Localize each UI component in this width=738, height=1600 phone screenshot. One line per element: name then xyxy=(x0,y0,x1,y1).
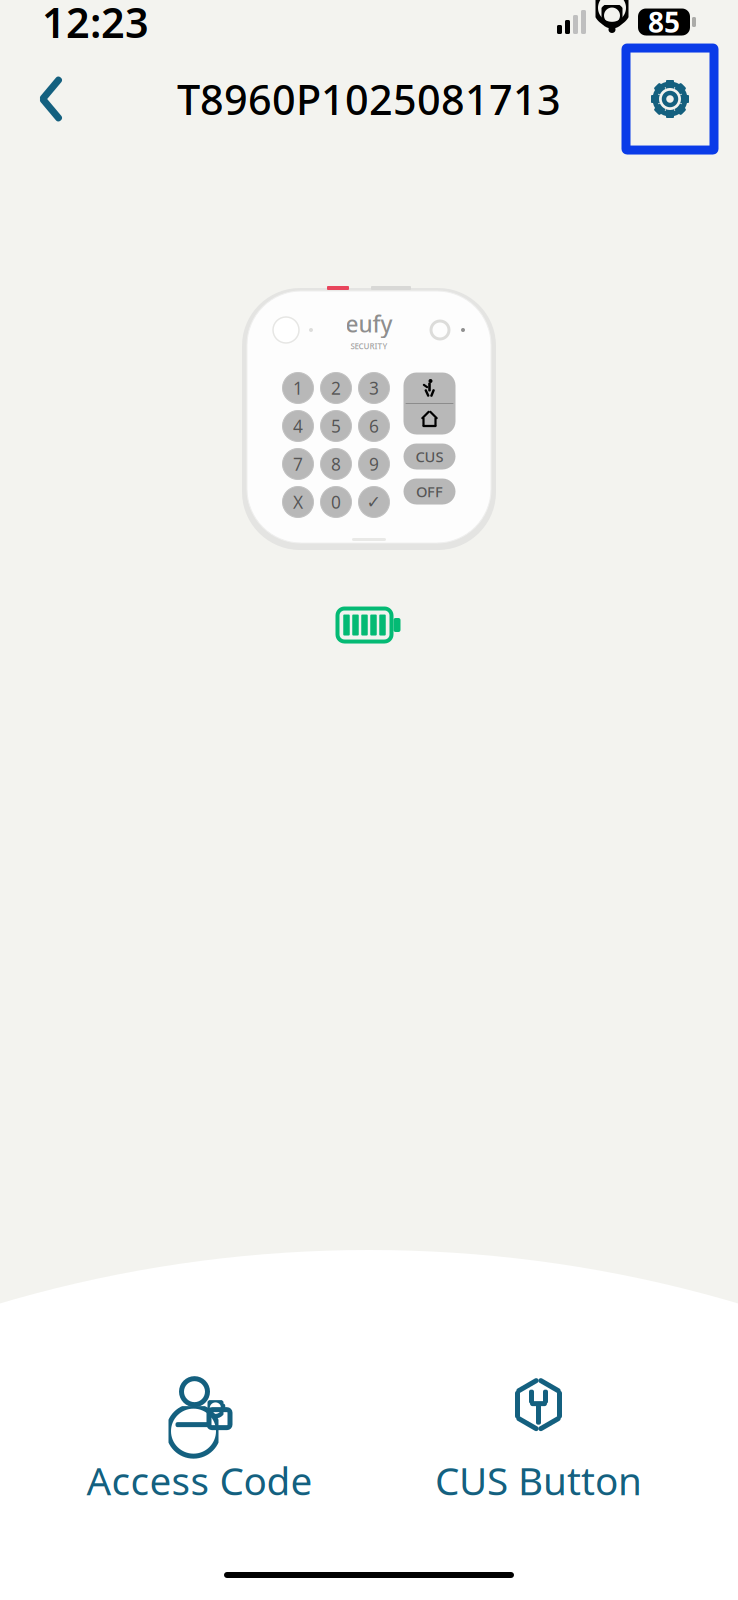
staticText: 4 xyxy=(293,414,303,437)
staticText: 12:23 xyxy=(42,0,149,49)
staticText: 7 xyxy=(293,452,303,475)
staticText: CUS Button xyxy=(435,1455,642,1506)
staticText: 3 xyxy=(369,376,379,399)
staticText: 5 xyxy=(331,414,341,437)
staticText: SECURITY xyxy=(350,341,387,351)
staticText: T8960P1025081713 xyxy=(177,72,561,126)
staticText: Access Code xyxy=(86,1455,312,1506)
staticText: 8 xyxy=(331,452,341,475)
staticText: 9 xyxy=(369,452,379,475)
staticText: 2 xyxy=(331,376,341,399)
button[interactable]: Back xyxy=(20,68,82,130)
staticText: X xyxy=(293,490,303,513)
staticText: CUS xyxy=(415,447,443,466)
button[interactable]: Settings xyxy=(622,44,718,154)
staticText: 6 xyxy=(369,414,379,437)
staticText: eufy xyxy=(345,309,392,339)
button[interactable]: Access Code xyxy=(30,1363,369,1516)
staticText: 1 xyxy=(293,376,303,399)
button[interactable]: CUS Button xyxy=(369,1363,708,1516)
staticText: OFF xyxy=(416,482,443,501)
staticText: ✓ xyxy=(366,492,381,512)
staticText: 85 xyxy=(648,3,680,41)
staticText: 0 xyxy=(331,490,341,513)
